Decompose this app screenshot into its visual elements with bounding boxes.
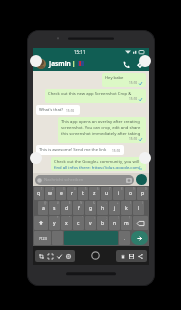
button[interactable]: #: [49, 201, 60, 215]
staticText: ): [142, 201, 143, 205]
staticText: t: [82, 190, 84, 197]
other: Shift: [38, 220, 44, 226]
button[interactable]: &: [85, 201, 96, 215]
button[interactable]: .: [119, 231, 130, 245]
staticText: 9: [133, 187, 135, 191]
staticText: z: [93, 190, 96, 197]
staticText: 15:10: [129, 81, 138, 85]
staticText: Nachricht schreiben: [44, 177, 84, 183]
button[interactable]: @: [38, 201, 48, 215]
button[interactable]: $: [61, 201, 72, 215]
button[interactable]: Settings: [64, 251, 73, 262]
button[interactable]: Enter: [131, 231, 148, 245]
button[interactable]: ): [133, 201, 144, 215]
button[interactable]: Nachricht schreiben: [35, 175, 134, 185]
button[interactable]: ?: [121, 216, 132, 230]
staticText: y: [53, 220, 56, 227]
staticText: ?: [129, 216, 131, 220]
button[interactable]: :: [85, 216, 96, 230]
staticText: q: [37, 190, 41, 197]
staticText: p: [141, 190, 145, 197]
button[interactable]: 4: [67, 187, 77, 200]
button[interactable]: %: [73, 201, 84, 215]
staticText: ': [82, 216, 83, 220]
staticText: find all infos there: https://plus.googl…: [54, 165, 143, 169]
staticText: %: [80, 201, 83, 205]
staticText: #: [57, 201, 59, 205]
staticText: o: [129, 190, 133, 197]
button[interactable]: ': [73, 216, 84, 230]
button[interactable]: 7: [101, 187, 112, 200]
staticText: (: [130, 201, 131, 205]
staticText: i: [118, 190, 120, 197]
button[interactable]: Share: [136, 251, 145, 262]
button[interactable]: Crop handle: [139, 55, 151, 67]
button[interactable]: Backspace: [133, 216, 148, 230]
staticText: e: [60, 190, 63, 197]
staticText: &: [93, 201, 95, 205]
button[interactable]: This app opens an overlay after creating…: [58, 117, 146, 143]
button[interactable]: ;: [97, 216, 108, 230]
button[interactable]: Crop handle: [139, 152, 151, 164]
staticText: k: [125, 205, 128, 212]
staticText: Check out this new app Screenshot Crop &…: [48, 91, 143, 97]
button[interactable]: Attach: [134, 58, 146, 70]
staticText: 0: [145, 187, 147, 191]
button[interactable]: +: [109, 201, 120, 215]
staticText: This app opens an overlay after creating…: [61, 119, 143, 125]
button[interactable]: ": [61, 216, 72, 230]
staticText: Check out the Google+ community, you wil…: [54, 159, 140, 165]
staticText: x: [65, 220, 68, 227]
button[interactable]: Capture: [91, 251, 100, 260]
button[interactable]: 3: [56, 187, 66, 200]
button[interactable]: 2: [45, 187, 55, 200]
staticText: 2: [52, 187, 54, 191]
button[interactable]: Check out the Google+ community, you wil…: [51, 157, 146, 171]
staticText: 5: [85, 187, 87, 191]
staticText: a: [42, 205, 45, 212]
staticText: +: [117, 201, 119, 205]
button[interactable]: Confirm: [55, 251, 64, 262]
button[interactable]: Crop handle: [30, 55, 42, 67]
button[interactable]: *: [49, 216, 60, 230]
button[interactable]: Call: [120, 58, 132, 70]
staticText: 1: [41, 187, 43, 191]
staticText: What's that?: [39, 107, 64, 113]
button[interactable]: 1: [34, 187, 44, 200]
staticText: h: [101, 205, 105, 212]
other: Backspace: [137, 221, 144, 226]
button[interactable]: 8: [113, 187, 124, 200]
button[interactable]: Shift: [34, 216, 48, 230]
button[interactable]: Contact avatar: [36, 59, 46, 69]
button[interactable]: ?123: [34, 231, 51, 245]
button[interactable]: Crop: [37, 251, 46, 262]
button[interactable]: -: [97, 201, 108, 215]
button[interactable]: Check out this new app Screenshot Crop &…: [45, 89, 146, 103]
staticText: n: [113, 220, 117, 227]
button[interactable]: 5: [78, 187, 88, 200]
button[interactable]: !: [109, 216, 120, 230]
button[interactable]: 0: [137, 187, 148, 200]
button[interactable]: This is awesome! Send me the link please…: [36, 145, 124, 155]
button[interactable]: Expand: [46, 251, 55, 262]
button[interactable]: 6: [89, 187, 100, 200]
button[interactable]: What's that?: [36, 105, 80, 115]
staticText: ": [69, 216, 71, 220]
staticText: b: [101, 220, 105, 227]
staticText: !: [118, 216, 119, 220]
button[interactable]: (: [121, 201, 132, 215]
staticText: s: [53, 205, 56, 212]
button[interactable]: Hey babe: [102, 73, 146, 87]
staticText: j: [114, 205, 116, 212]
staticText: 15:10: [129, 137, 138, 141]
staticText: This is awesome! Send me the link please…: [39, 147, 110, 153]
button[interactable]: Send voice message: [136, 174, 147, 185]
button[interactable]: Delete: [118, 251, 127, 262]
button[interactable]: 9: [125, 187, 136, 200]
staticText: .: [124, 236, 126, 241]
staticText: m: [124, 220, 129, 227]
button[interactable]: Save: [127, 251, 136, 262]
button[interactable]: Crop handle: [30, 152, 42, 164]
